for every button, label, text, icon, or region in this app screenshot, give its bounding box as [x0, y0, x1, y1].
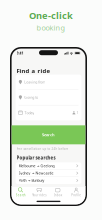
staticText: Leaving from: [24, 80, 45, 84]
button[interactable]: Today: [16, 105, 81, 120]
button[interactable]: Leaving from: [16, 75, 81, 90]
staticText: Search: [42, 132, 55, 137]
staticText: Melbourne → Geelong: [19, 163, 55, 168]
staticText: Your rides: [32, 193, 46, 197]
staticText: Profile: [71, 193, 81, 197]
button[interactable]: Sydney → Newcastle: [16, 170, 81, 177]
staticText: Free cancellation up to 24h before: [17, 147, 69, 151]
button[interactable]: Perth → Bunbury: [16, 177, 81, 184]
staticText: 1: [76, 110, 78, 115]
button[interactable]: Your rides: [30, 186, 48, 198]
staticText: Search: [16, 193, 26, 197]
staticText: 9:41: [17, 51, 24, 55]
button[interactable]: Profile: [67, 186, 85, 198]
button[interactable]: Search: [12, 186, 30, 198]
button[interactable]: Melbourne → Geelong: [16, 162, 81, 169]
button[interactable]: Going to: [16, 90, 81, 105]
staticText: Perth → Bunbury: [19, 178, 45, 183]
staticText: Sydney → Newcastle: [19, 171, 54, 175]
button[interactable]: Search: [12, 125, 85, 144]
staticText: Find a ride: [17, 67, 51, 75]
staticText: Inbox: [54, 193, 62, 197]
staticText: Popular searches: [17, 155, 56, 161]
staticText: One-click: [29, 9, 73, 22]
staticText: Today: [24, 110, 34, 115]
button[interactable]: Inbox: [48, 186, 67, 198]
staticText: Going to: [24, 95, 38, 100]
staticText: booking: [36, 23, 65, 33]
